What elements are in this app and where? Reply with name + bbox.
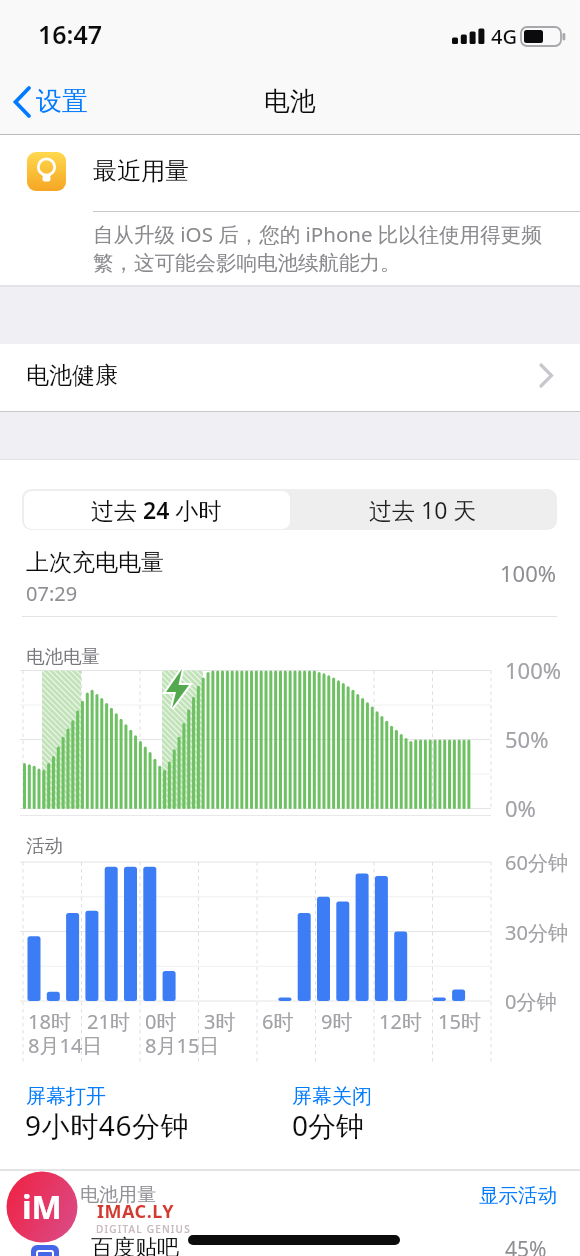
staticText: 最近用量 [93,156,189,186]
staticText: 21时 [87,1008,130,1035]
button[interactable] [290,491,556,529]
staticText: 上次充电电量 [26,548,164,577]
button[interactable]: 显示活动 [357,1174,557,1217]
staticText: 电池用量 [80,1183,156,1207]
button[interactable] [8,84,103,122]
staticText: 45% [505,1235,547,1256]
staticText: 电池 [264,85,316,118]
staticText: 8月14日 [28,1032,103,1059]
staticText: 活动 [26,834,63,857]
staticText: 60分钟 [505,849,568,876]
staticText: 0分钟 [292,1106,365,1144]
staticText: 0% [505,793,536,823]
staticText: 16:47 [38,17,103,51]
staticText: iM [22,1185,62,1229]
staticText: 100% [500,558,557,588]
staticText: 屏幕关闭 [292,1084,372,1109]
staticText: 8月15日 [145,1032,220,1059]
staticText: 6时 [262,1008,294,1035]
staticText: 18时 [28,1008,71,1035]
staticText: 屏幕打开 [26,1084,106,1109]
staticText: 0分钟 [505,988,557,1015]
staticText: 百度贴吧 [91,1234,179,1256]
staticText: 过去 24 小时 [91,494,222,525]
staticText: 3时 [204,1008,236,1035]
staticText: 9时 [321,1008,353,1035]
staticText: DIGITAL GENIUS [96,1222,191,1236]
staticText: 设置 [36,85,88,118]
staticText: 50% [505,724,549,754]
staticText: 15时 [438,1008,481,1035]
staticText: 电池电量 [26,645,100,668]
staticText: 30分钟 [505,919,568,946]
staticText: 过去 10 天 [369,494,477,525]
staticText: IMAC.LY [97,1199,174,1224]
staticText: 自从升级 iOS 后，您的 iPhone 比以往使用得更频 繁，这可能会影响电池… [93,220,580,276]
button[interactable] [0,135,580,212]
staticText: 4G [491,23,517,50]
staticText: 显示活动 [479,1183,557,1208]
button[interactable] [0,343,580,411]
staticText: 12时 [379,1008,422,1035]
staticText: 100% [505,655,562,685]
staticText: 07:29 [26,580,78,607]
staticText: 9小时46分钟 [25,1106,190,1144]
button[interactable] [24,491,290,529]
button[interactable] [0,1226,580,1256]
staticText: 0时 [145,1008,177,1035]
staticText: 电池健康 [26,361,118,390]
